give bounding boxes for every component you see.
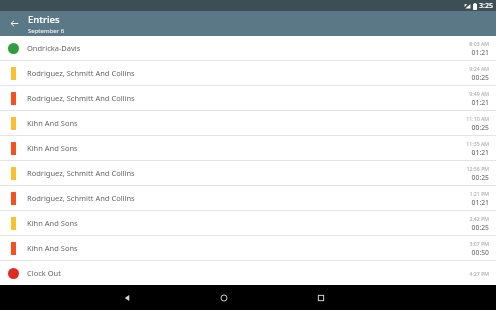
button[interactable]: Rodriguez, Schmitt And Collins	[0, 61, 496, 85]
staticText: 9:49 AM	[469, 90, 489, 97]
button[interactable]: Ondricka-Davis	[0, 36, 496, 60]
button[interactable]: Kihn And Sons	[0, 136, 496, 160]
staticText: 01:21	[471, 48, 489, 57]
staticText: 11:35 AM	[466, 140, 489, 147]
button[interactable]: Kihn And Sons	[0, 111, 496, 135]
button[interactable]: Kihn And Sons	[0, 211, 496, 235]
staticText: Entries	[28, 13, 60, 26]
staticText: Kihn And Sons	[27, 118, 466, 128]
staticText: Kihn And Sons	[27, 243, 469, 253]
button[interactable]: Clock Out	[0, 261, 496, 285]
staticText: 00:25	[471, 123, 489, 132]
button[interactable]: Kihn And Sons	[0, 236, 496, 260]
staticText: 12:56 PM	[466, 165, 489, 172]
staticText: 1:21 PM	[469, 190, 489, 197]
staticText: 01:21	[471, 98, 489, 107]
staticText: Ondricka-Davis	[27, 43, 469, 53]
button[interactable]: Recent apps	[308, 285, 334, 310]
staticText: Rodriguez, Schmitt And Collins	[27, 93, 469, 103]
staticText: 00:25	[471, 223, 489, 232]
staticText: 01:21	[471, 148, 489, 157]
staticText: Kihn And Sons	[27, 218, 469, 228]
staticText: 00:25	[471, 73, 489, 82]
staticText: 4:27 PM	[469, 270, 489, 277]
button[interactable]: Home	[211, 285, 237, 310]
staticText: 8:03 AM	[469, 40, 489, 47]
button[interactable]: Rodriguez, Schmitt And Collins	[0, 186, 496, 210]
button[interactable]: Rodriguez, Schmitt And Collins	[0, 161, 496, 185]
staticText: Rodriguez, Schmitt And Collins	[27, 168, 466, 178]
staticText: 3:25	[479, 1, 493, 11]
staticText: 00:25	[471, 173, 489, 182]
staticText: 01:21	[471, 198, 489, 207]
button[interactable]: Rodriguez, Schmitt And Collins	[0, 86, 496, 110]
button[interactable]: Back	[0, 11, 28, 36]
staticText: 3:07 PM	[469, 240, 489, 247]
staticText: Rodriguez, Schmitt And Collins	[27, 193, 469, 203]
staticText: Clock Out	[27, 268, 469, 278]
staticText: 2:42 PM	[469, 215, 489, 222]
staticText: September 6	[28, 27, 65, 35]
staticText: Rodriguez, Schmitt And Collins	[27, 68, 469, 78]
staticText: 9:24 AM	[469, 65, 489, 72]
staticText: Kihn And Sons	[27, 143, 466, 153]
staticText: 11:10 AM	[466, 115, 489, 122]
staticText: 00:50	[471, 248, 489, 257]
button[interactable]: Back	[114, 285, 140, 310]
